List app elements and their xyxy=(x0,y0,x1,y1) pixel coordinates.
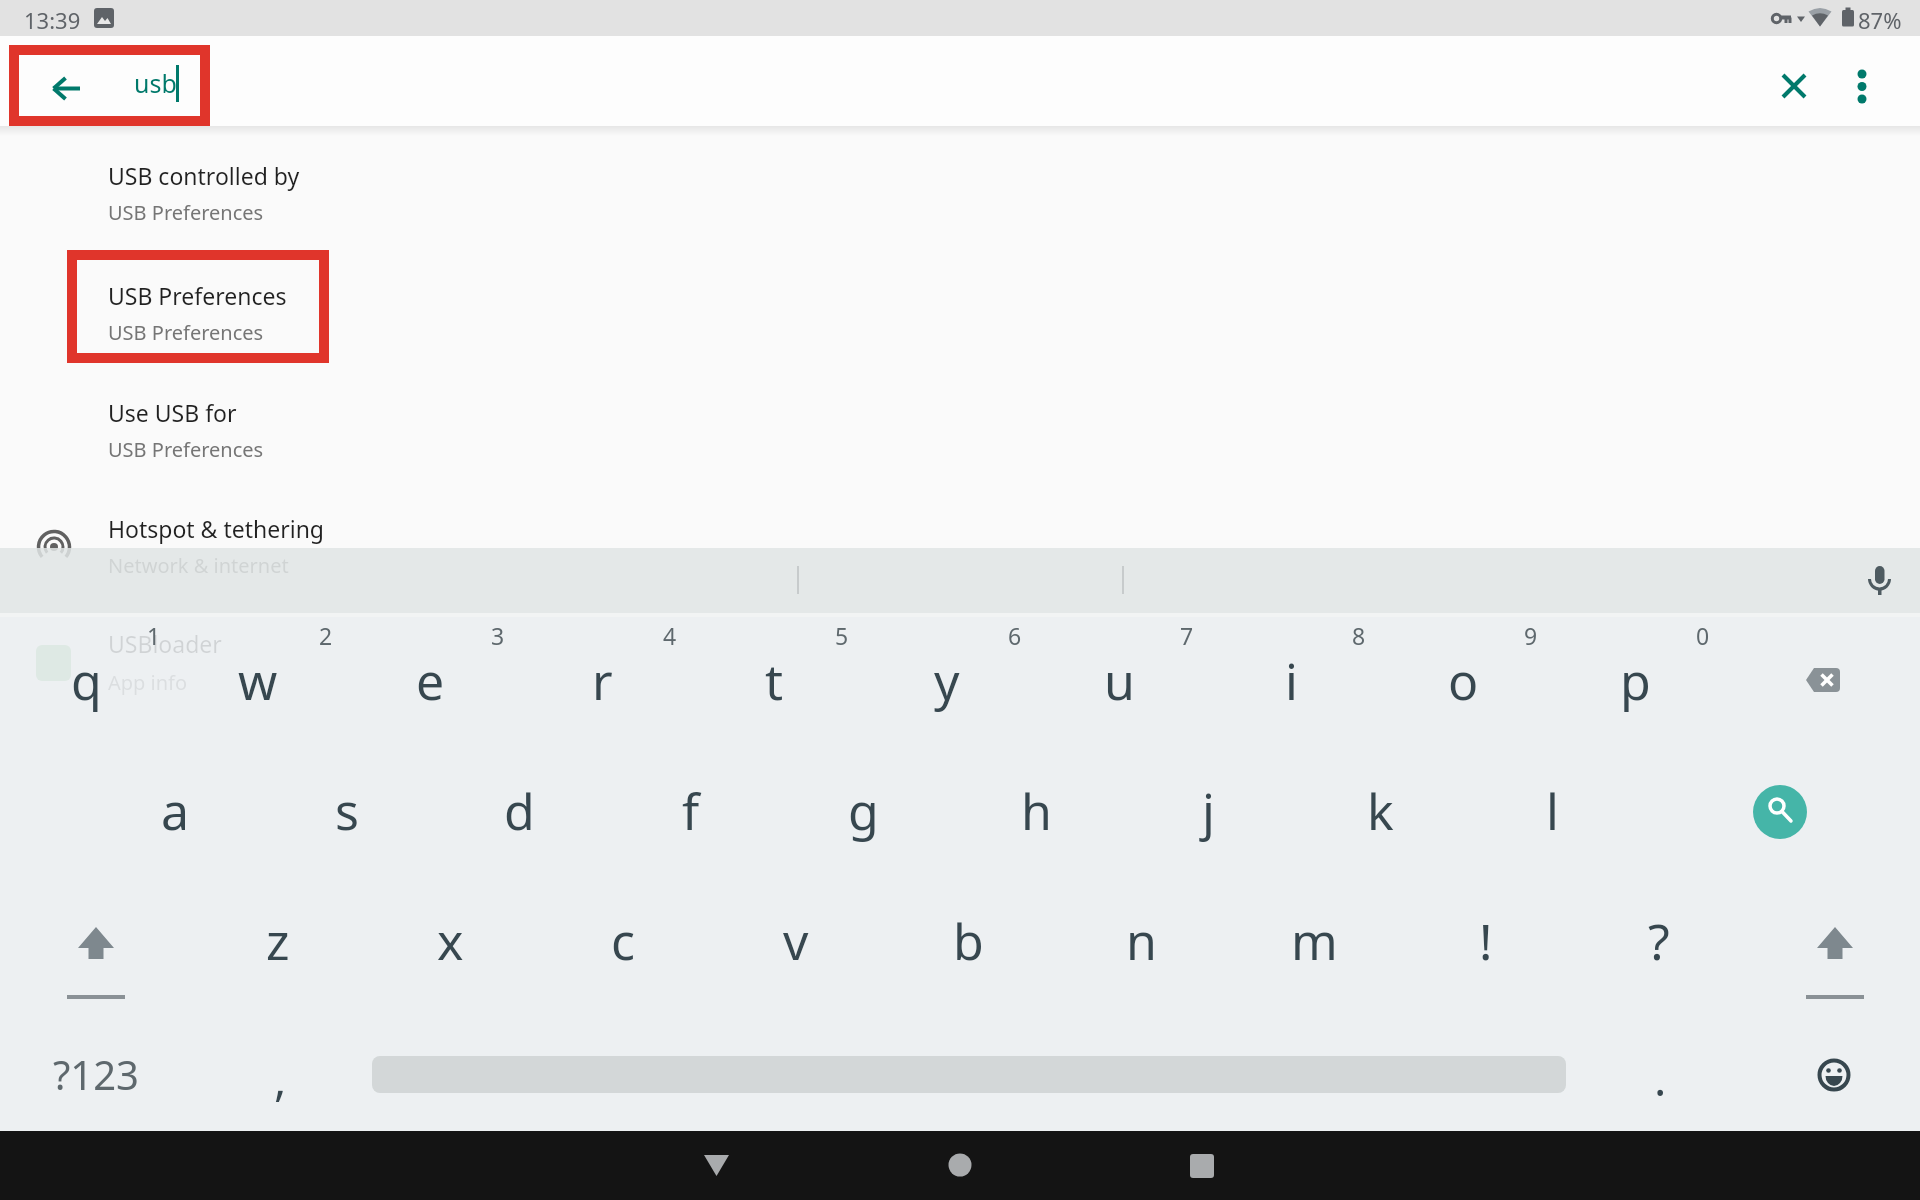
button[interactable] xyxy=(1753,785,1807,839)
button[interactable]: i xyxy=(1206,617,1376,745)
button[interactable]: s xyxy=(262,747,432,875)
button[interactable]: h xyxy=(951,747,1121,875)
staticText: f xyxy=(682,777,700,845)
staticText: 0 xyxy=(1696,620,1710,651)
button[interactable]: ?123 xyxy=(16,1019,176,1129)
button[interactable]: , xyxy=(220,1023,340,1133)
staticText: z xyxy=(266,907,290,975)
button[interactable]: e xyxy=(345,617,515,745)
button[interactable]: v xyxy=(711,877,881,1005)
staticText: ! xyxy=(1479,907,1493,975)
staticText: usb xyxy=(134,66,177,100)
staticText: 7 xyxy=(1180,620,1194,651)
button[interactable]: k xyxy=(1295,747,1465,875)
button[interactable]: ! xyxy=(1401,877,1571,1005)
staticText: c xyxy=(611,907,635,975)
button[interactable]: q xyxy=(1,617,171,745)
staticText: h xyxy=(1021,777,1052,845)
staticText: l xyxy=(1546,777,1559,845)
button[interactable]: y xyxy=(862,617,1032,745)
staticText: 5 xyxy=(835,620,849,651)
button[interactable] xyxy=(650,1131,780,1200)
button[interactable]: f xyxy=(606,747,776,875)
button[interactable] xyxy=(1814,1055,1854,1095)
staticText: y xyxy=(934,647,960,715)
staticText: 4 xyxy=(663,620,677,651)
button[interactable] xyxy=(0,382,1920,499)
staticText: 9 xyxy=(1524,620,1538,651)
button[interactable] xyxy=(1781,893,1889,997)
button[interactable]: c xyxy=(538,877,708,1005)
button[interactable] xyxy=(1137,1131,1267,1200)
staticText: USB controlled by xyxy=(108,160,300,191)
button[interactable]: n xyxy=(1056,877,1226,1005)
staticText: App info xyxy=(108,669,188,696)
button[interactable]: g xyxy=(778,747,948,875)
staticText: USB Preferences xyxy=(108,199,264,226)
staticText: USB Preferences xyxy=(108,436,264,463)
staticText: 87% xyxy=(1858,5,1902,35)
staticText: 6 xyxy=(1008,620,1022,651)
staticText: a xyxy=(161,777,190,845)
button[interactable]: . xyxy=(1600,1023,1720,1133)
button[interactable] xyxy=(40,60,92,112)
staticText: r xyxy=(592,647,613,715)
staticText: p xyxy=(1620,647,1651,715)
staticText: g xyxy=(848,777,879,845)
staticText: . xyxy=(1654,1047,1667,1110)
staticText: n xyxy=(1126,907,1157,975)
button[interactable]: x xyxy=(365,877,535,1005)
staticText: 13:39 xyxy=(24,5,81,35)
button[interactable]: b xyxy=(883,877,1053,1005)
staticText: u xyxy=(1104,647,1135,715)
button[interactable]: a xyxy=(90,747,260,875)
button[interactable]: u xyxy=(1034,617,1204,745)
staticText: b xyxy=(953,907,984,975)
button[interactable]: o xyxy=(1378,617,1548,745)
button[interactable]: m xyxy=(1229,877,1399,1005)
button[interactable] xyxy=(0,264,1920,382)
staticText: 1 xyxy=(147,620,161,651)
staticText: w xyxy=(238,647,278,715)
button[interactable]: r xyxy=(517,617,687,745)
staticText: x xyxy=(437,907,464,975)
staticText: ? xyxy=(1648,907,1670,975)
staticText: v xyxy=(783,907,809,975)
button[interactable] xyxy=(895,1131,1025,1200)
staticText: 3 xyxy=(491,620,505,651)
button[interactable]: w xyxy=(173,617,343,745)
staticText: d xyxy=(504,777,535,845)
staticText: Hotspot & tethering xyxy=(108,513,324,544)
button[interactable]: z xyxy=(193,877,363,1005)
button[interactable] xyxy=(1860,558,1900,602)
staticText: ?123 xyxy=(53,1047,139,1101)
staticText: k xyxy=(1367,777,1394,845)
staticText: m xyxy=(1291,907,1338,975)
button[interactable]: l xyxy=(1467,747,1637,875)
staticText: i xyxy=(1285,647,1298,715)
button[interactable]: j xyxy=(1123,747,1293,875)
button[interactable] xyxy=(1740,620,1920,748)
button[interactable]: p xyxy=(1550,617,1720,745)
staticText: e xyxy=(416,647,445,715)
staticText: USB Preferences xyxy=(108,280,287,311)
button[interactable] xyxy=(0,617,1920,735)
staticText: o xyxy=(1448,647,1479,715)
button[interactable]: d xyxy=(434,747,604,875)
staticText: 8 xyxy=(1352,620,1366,651)
staticText: j xyxy=(1202,777,1215,845)
button[interactable] xyxy=(1768,60,1820,112)
staticText: , xyxy=(274,1047,287,1110)
staticText: Network & internet xyxy=(108,552,289,579)
button[interactable]: t xyxy=(689,617,859,745)
staticText: 2 xyxy=(319,620,333,651)
button[interactable]: ? xyxy=(1574,877,1744,1005)
button[interactable] xyxy=(42,893,150,997)
staticText: Use USB for xyxy=(108,397,237,428)
staticText: q xyxy=(71,647,102,715)
staticText: s xyxy=(335,777,359,845)
button[interactable] xyxy=(0,499,1920,617)
button[interactable] xyxy=(1840,60,1884,112)
button[interactable] xyxy=(0,146,1920,264)
